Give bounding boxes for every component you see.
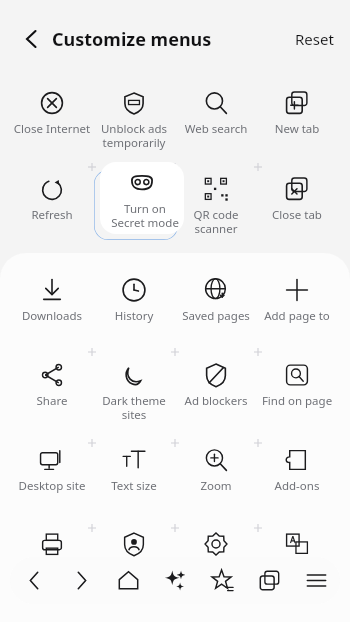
staticText: Close tab (256, 207, 338, 223)
button[interactable]: Add page to (256, 277, 338, 324)
staticText: New tab (256, 121, 338, 137)
staticText: Turn on Secret mode (103, 201, 184, 230)
button[interactable]: Forward (58, 557, 105, 604)
button[interactable]: Add-ons (256, 447, 338, 494)
button[interactable]: Close tab (256, 176, 338, 223)
button[interactable]: Privacy dashboard (114, 524, 154, 564)
button[interactable]: Refresh (11, 176, 93, 223)
button[interactable]: Downloads (11, 277, 93, 324)
button[interactable]: Ad blockers (175, 362, 257, 409)
button[interactable]: Tabs (246, 557, 293, 604)
staticText: Saved pages (175, 308, 257, 324)
button[interactable]: Close Internet (11, 90, 93, 137)
button[interactable]: Text size (93, 447, 175, 494)
staticText: Text size (93, 478, 175, 494)
button[interactable]: Translate (277, 524, 317, 564)
button[interactable]: Home (105, 557, 152, 604)
staticText: Share (11, 393, 93, 409)
button[interactable]: Dark theme sites (93, 362, 175, 422)
button[interactable]: Back (14, 22, 48, 56)
staticText: Add-ons (256, 478, 338, 494)
button[interactable]: Bookmarks (199, 557, 246, 604)
button[interactable]: History (93, 277, 175, 324)
staticText: Find on page (256, 393, 338, 409)
button[interactable]: New tab (256, 90, 338, 137)
staticText: Desktop site (11, 478, 93, 494)
button[interactable]: Back (10, 557, 58, 604)
staticText: Ad blockers (175, 393, 257, 409)
button[interactable]: Saved pages (175, 277, 257, 324)
button[interactable]: Desktop site (11, 447, 93, 494)
button[interactable]: Zoom (175, 447, 257, 494)
staticText: Refresh (11, 207, 93, 223)
staticText: Customize menus (52, 27, 212, 52)
button[interactable]: Turn on Secret mode (100, 162, 184, 234)
staticText: Close Internet (11, 121, 93, 137)
button[interactable]: Share (11, 362, 93, 409)
button[interactable]: Assistant (152, 557, 199, 604)
staticText: Reset (295, 29, 334, 49)
button[interactable]: QR code scanner (175, 176, 257, 236)
button[interactable]: Web search (175, 90, 257, 137)
staticText: Unblock ads temporarily (93, 121, 175, 150)
button[interactable]: Unblock ads temporarily (93, 90, 175, 150)
button[interactable]: Reset (289, 23, 340, 55)
staticText: Zoom (175, 478, 257, 494)
staticText: QR code scanner (175, 207, 257, 236)
staticText: Dark theme sites (93, 393, 175, 422)
button[interactable]: Print (32, 524, 72, 564)
button[interactable]: Settings (196, 524, 236, 564)
staticText: Add page to (256, 308, 338, 324)
staticText: Web search (175, 121, 257, 137)
button[interactable]: Find on page (256, 362, 338, 409)
button[interactable]: Menu (293, 557, 340, 604)
staticText: Downloads (11, 308, 93, 324)
staticText: History (93, 308, 175, 324)
